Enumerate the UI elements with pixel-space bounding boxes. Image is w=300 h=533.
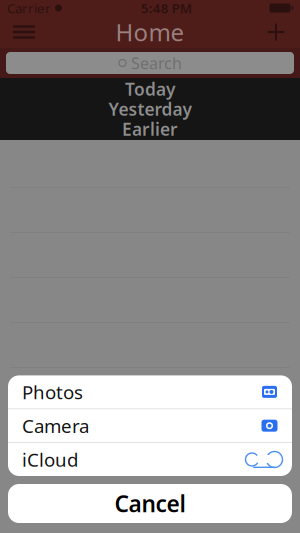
button[interactable]: Add	[254, 16, 298, 48]
staticText: Earlier	[122, 117, 178, 140]
staticText: Today	[125, 77, 175, 100]
staticText: iCloud	[22, 447, 78, 472]
staticText: Camera	[22, 413, 89, 438]
staticText: Cancel	[114, 488, 185, 518]
staticText: Yesterday	[108, 97, 191, 120]
button[interactable]: iCloud	[8, 443, 292, 476]
staticText: Photos	[22, 379, 83, 404]
staticText: Search	[131, 52, 182, 74]
button[interactable]: Menu	[2, 16, 46, 48]
button[interactable]: Search	[6, 52, 294, 74]
button[interactable]: Yesterday	[0, 99, 300, 119]
button[interactable]: Photos	[8, 375, 292, 408]
staticText: 5:48 PM	[141, 0, 192, 17]
staticText: Home	[115, 16, 184, 48]
button[interactable]: Earlier	[0, 119, 300, 139]
button[interactable]: Cancel	[8, 484, 292, 523]
button[interactable]: Camera	[8, 409, 292, 442]
button[interactable]: Today	[0, 79, 300, 99]
staticText: Carrier	[7, 0, 51, 17]
